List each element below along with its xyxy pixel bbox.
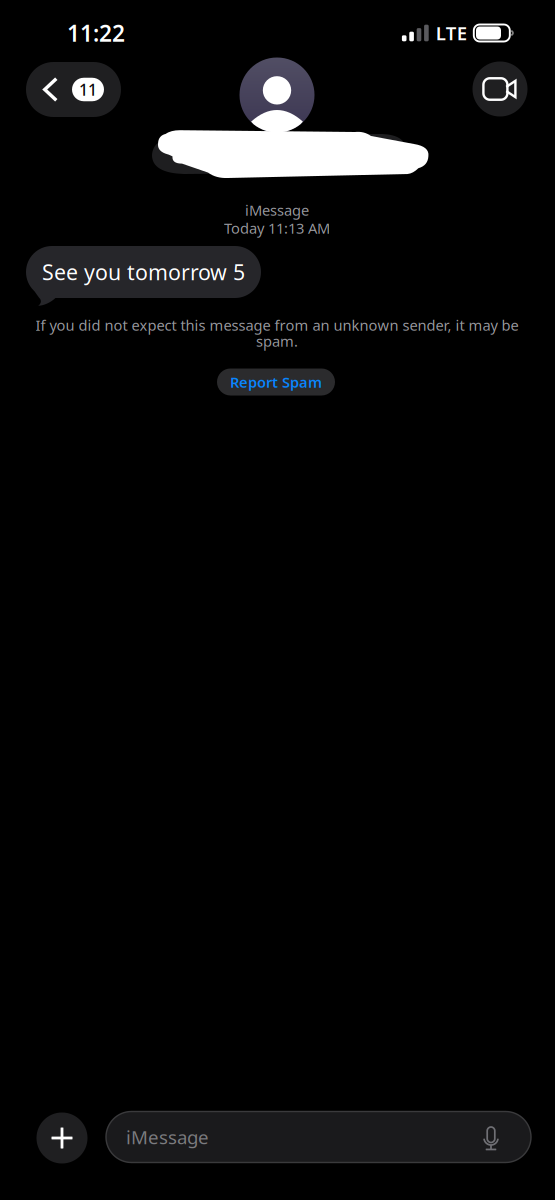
button[interactable]: Back, 11 unread — [26, 62, 121, 117]
button[interactable]: FaceTime video call — [472, 61, 527, 116]
staticText: LTE — [436, 21, 467, 45]
button[interactable]: Report Spam — [217, 368, 335, 395]
staticText: 11:22 — [67, 18, 125, 48]
button[interactable]: Contact details — [239, 57, 314, 132]
staticText: See you tomorrow 5 — [42, 258, 245, 286]
staticText: 11 — [79, 79, 97, 100]
staticText: Report Spam — [230, 372, 322, 392]
button[interactable]: iMessage text field — [106, 1111, 531, 1162]
staticText: iMessage — [245, 200, 309, 220]
staticText: spam. — [256, 331, 298, 351]
button[interactable]: Add attachment — [36, 1112, 87, 1163]
staticText: If you did not expect this message from … — [35, 315, 518, 335]
staticText: iMessage — [126, 1125, 209, 1149]
staticText: Today 11:13 AM — [224, 218, 330, 238]
